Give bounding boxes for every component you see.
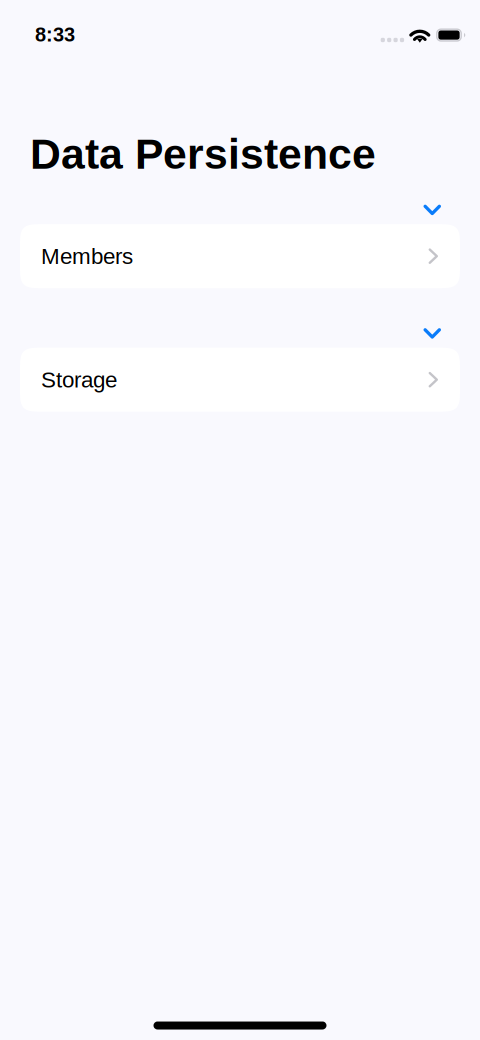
button[interactable]: Storage: [20, 348, 460, 412]
button[interactable]: Collapse Storage section: [410, 319, 454, 348]
staticText: Members: [41, 244, 133, 269]
button[interactable]: Collapse Members section: [410, 196, 454, 224]
staticText: 8:33: [35, 23, 75, 46]
button[interactable]: Members: [20, 224, 460, 288]
staticText: Storage: [41, 367, 117, 392]
staticText: Data Persistence: [30, 130, 376, 178]
